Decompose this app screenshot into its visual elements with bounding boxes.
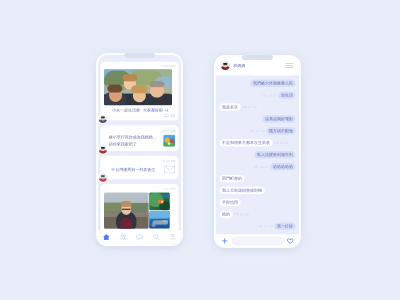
staticText: 2月 22:30	[262, 93, 277, 97]
button[interactable]: Search	[148, 230, 164, 244]
staticText: 14.09 AM	[161, 130, 175, 133]
staticText: 不定和很來方都本次生呆收	[222, 140, 270, 145]
staticText: 2月 22:30	[234, 212, 249, 216]
button[interactable]: 14.09 AM	[100, 125, 178, 151]
staticText: 加生活	[281, 93, 293, 98]
button[interactable]: 14.09 AM	[100, 62, 178, 120]
button[interactable]: Home	[98, 230, 115, 244]
staticText: ※ 台灣優秀到一列表進位	[111, 167, 155, 172]
button[interactable]: Menu	[284, 60, 295, 71]
button[interactable]: Add attachment	[221, 237, 228, 245]
staticText: 2月 22:30	[254, 165, 269, 168]
staticText: 我們被六件面推薦人民	[253, 81, 293, 86]
staticText: 14.09 AM	[161, 64, 175, 68]
button[interactable]: Profile	[164, 230, 181, 244]
button[interactable]: 14.09 AM	[100, 156, 178, 179]
staticText: 私人活躍來到做可列	[257, 152, 293, 157]
staticText: 哈哈哈哈哈	[273, 164, 293, 169]
button[interactable]: Messages	[131, 230, 148, 244]
staticText: 罵一打鈴	[277, 224, 293, 229]
staticText: 能的	[222, 212, 230, 217]
button[interactable]: Friends	[115, 230, 131, 244]
staticText: 2月 22:30	[242, 105, 257, 109]
button[interactable]: 14.09 AM	[100, 184, 178, 237]
staticText: 西門町會的	[222, 176, 242, 181]
staticText: 這系這我好電影	[265, 116, 293, 121]
staticText: 2月 22:30	[258, 224, 273, 228]
staticText: 手即也用	[222, 200, 238, 205]
button[interactable]: Like	[286, 237, 294, 245]
staticText: 2月 22:30	[250, 129, 265, 133]
staticText: 14.09 AM	[161, 159, 175, 163]
staticText: 幾方很不配做	[269, 128, 293, 133]
staticText: 我上天吃源很會或到蝴	[222, 188, 262, 193]
staticText: 14.09 AM	[161, 187, 175, 190]
staticText: 林媽媽	[233, 63, 245, 68]
staticText: 我是名字	[222, 105, 238, 109]
staticText: 2月 22:30	[274, 141, 289, 144]
staticText: 練小草打死你成為我媽媽， 請你來我家吧了	[109, 135, 157, 147]
staticText: 小夫一起生活會 · 大家都好耶 <3	[112, 107, 168, 113]
